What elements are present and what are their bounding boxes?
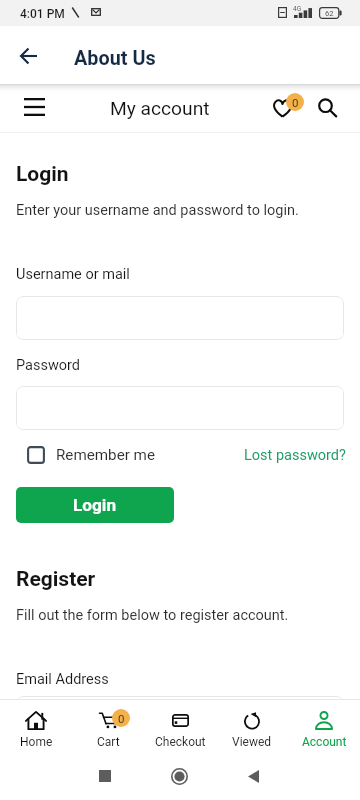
button[interactable] <box>16 696 344 740</box>
button[interactable]: Wishlist <box>268 92 304 128</box>
staticText: 4:01 PM <box>20 7 65 21</box>
button[interactable]: Recents <box>88 759 122 793</box>
button[interactable]: Menu <box>17 89 52 124</box>
staticText: 0 <box>118 712 125 725</box>
staticText: Email Address <box>16 671 109 688</box>
staticText: My account <box>110 97 210 120</box>
staticText: 4G <box>293 5 302 13</box>
staticText: Username or mail <box>16 266 130 283</box>
staticText: Password <box>16 357 81 374</box>
button[interactable] <box>16 296 344 340</box>
button[interactable]: Lost password? <box>244 441 346 469</box>
staticText: Cart <box>97 735 120 749</box>
staticText: Register <box>16 567 96 592</box>
staticText: Viewed <box>232 735 272 749</box>
staticText: Login <box>16 162 69 187</box>
staticText: 0 <box>292 96 299 109</box>
staticText: 62 <box>325 9 334 18</box>
staticText: Remember me <box>56 446 155 464</box>
button[interactable]: Home <box>0 699 72 753</box>
staticText: Login <box>73 495 117 515</box>
button[interactable]: Viewed <box>216 699 288 753</box>
button[interactable]: Account <box>288 699 360 753</box>
button[interactable]: Home <box>162 759 196 793</box>
staticText: Account <box>302 735 347 749</box>
button[interactable]: Checkout <box>144 699 216 753</box>
button[interactable]: Back <box>10 38 46 74</box>
staticText: Lost password? <box>244 447 346 464</box>
button[interactable]: Remember me <box>27 441 155 469</box>
staticText: Fill out the form below to register acco… <box>16 607 289 624</box>
button[interactable] <box>16 386 344 430</box>
staticText: Checkout <box>155 735 206 749</box>
button[interactable]: Back <box>236 759 270 793</box>
button[interactable]: Login <box>16 487 174 523</box>
button[interactable]: 0 <box>72 699 144 753</box>
staticText: About Us <box>74 47 156 70</box>
staticText: Enter your username and password to logi… <box>16 202 299 219</box>
button[interactable]: Search <box>307 91 343 127</box>
staticText: Home <box>20 735 53 749</box>
